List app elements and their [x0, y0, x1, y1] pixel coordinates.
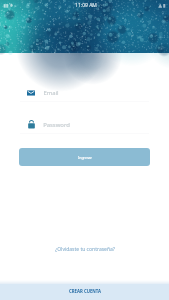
staticText: 11:09 AM — [75, 2, 97, 9]
staticText: Password — [43, 121, 70, 129]
other: Password — [27, 120, 36, 129]
button[interactable]: Email — [20, 84, 149, 101]
staticText: ¿Olvidaste tu contraseña? — [55, 246, 115, 253]
staticText: ▮▮ ♦ — [3, 2, 14, 8]
button[interactable]: ¿Olvidaste tu contraseña? — [51, 244, 119, 255]
staticText: Ingresar — [78, 155, 92, 160]
staticText: Email — [43, 89, 59, 97]
button[interactable]: Password — [20, 116, 149, 133]
button[interactable]: CREAR CUENTA — [0, 284, 169, 300]
staticText: ▲ ▮ — [158, 2, 166, 8]
button[interactable]: Ingresar — [19, 148, 150, 166]
staticText: CREAR CUENTA — [69, 288, 101, 294]
other: Email — [27, 89, 35, 97]
